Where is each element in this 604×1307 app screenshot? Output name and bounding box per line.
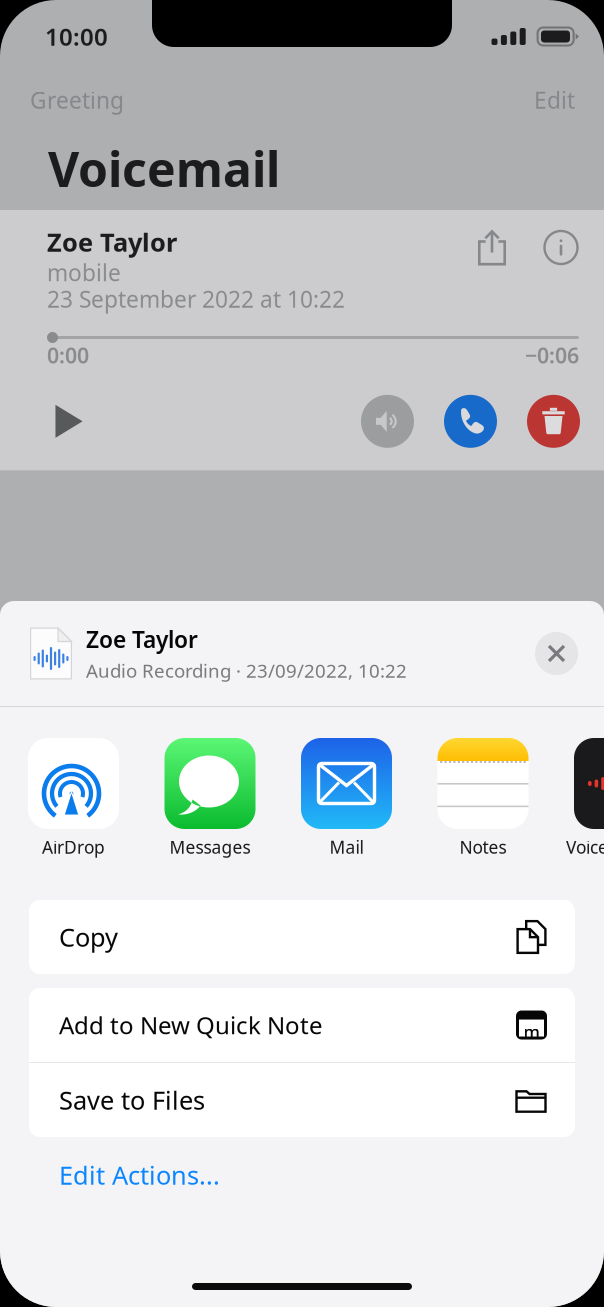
button[interactable]: Notes bbox=[0, 707, 130, 877]
button[interactable]: AirDrop bbox=[0, 707, 130, 877]
button[interactable]: Call back bbox=[444, 395, 497, 448]
staticText: Greeting bbox=[30, 85, 124, 115]
button[interactable]: Edit bbox=[534, 80, 575, 120]
button[interactable]: Mail bbox=[0, 707, 130, 877]
staticText: Voice Memos bbox=[566, 835, 604, 858]
button[interactable]: Delete bbox=[527, 395, 580, 448]
button[interactable]: Greeting bbox=[30, 80, 124, 120]
button[interactable]: Add to New Quick Note bbox=[29, 988, 575, 1062]
staticText: Notes bbox=[459, 835, 506, 858]
staticText: Voicemail bbox=[48, 137, 280, 200]
button[interactable]: Messages bbox=[0, 707, 130, 877]
staticText: Copy bbox=[59, 920, 118, 954]
staticText: AirDrop bbox=[42, 835, 105, 858]
staticText: Edit bbox=[534, 85, 575, 115]
staticText: Save to Files bbox=[59, 1083, 205, 1117]
button[interactable]: Share bbox=[477, 229, 507, 266]
button[interactable]: Save to Files bbox=[29, 1063, 575, 1137]
button[interactable]: Copy bbox=[29, 900, 575, 974]
staticText: Zoe Taylor bbox=[47, 225, 177, 259]
staticText: Edit Actions... bbox=[59, 1158, 220, 1192]
staticText: 10:00 bbox=[45, 21, 108, 52]
staticText: Add to New Quick Note bbox=[59, 1009, 323, 1041]
button[interactable]: Voicemail details bbox=[544, 230, 578, 264]
staticText: 23 September 2022 at 10:22 bbox=[47, 284, 345, 314]
staticText: 0:00 bbox=[47, 341, 89, 369]
staticText: mobile bbox=[47, 257, 121, 287]
staticText: −0:06 bbox=[525, 341, 579, 369]
staticText: m bbox=[523, 1020, 539, 1043]
staticText: Audio Recording · 23/09/2022, 10:22 bbox=[86, 658, 407, 683]
staticText: Messages bbox=[169, 835, 250, 858]
button[interactable]: Close bbox=[535, 632, 578, 675]
button[interactable]: Play bbox=[41, 393, 97, 449]
button[interactable]: Speaker bbox=[361, 395, 414, 448]
button[interactable]: Edit Actions... bbox=[29, 1153, 575, 1197]
button[interactable]: Voice Memos bbox=[0, 707, 130, 877]
staticText: Mail bbox=[329, 835, 363, 858]
staticText: Zoe Taylor bbox=[86, 624, 198, 654]
